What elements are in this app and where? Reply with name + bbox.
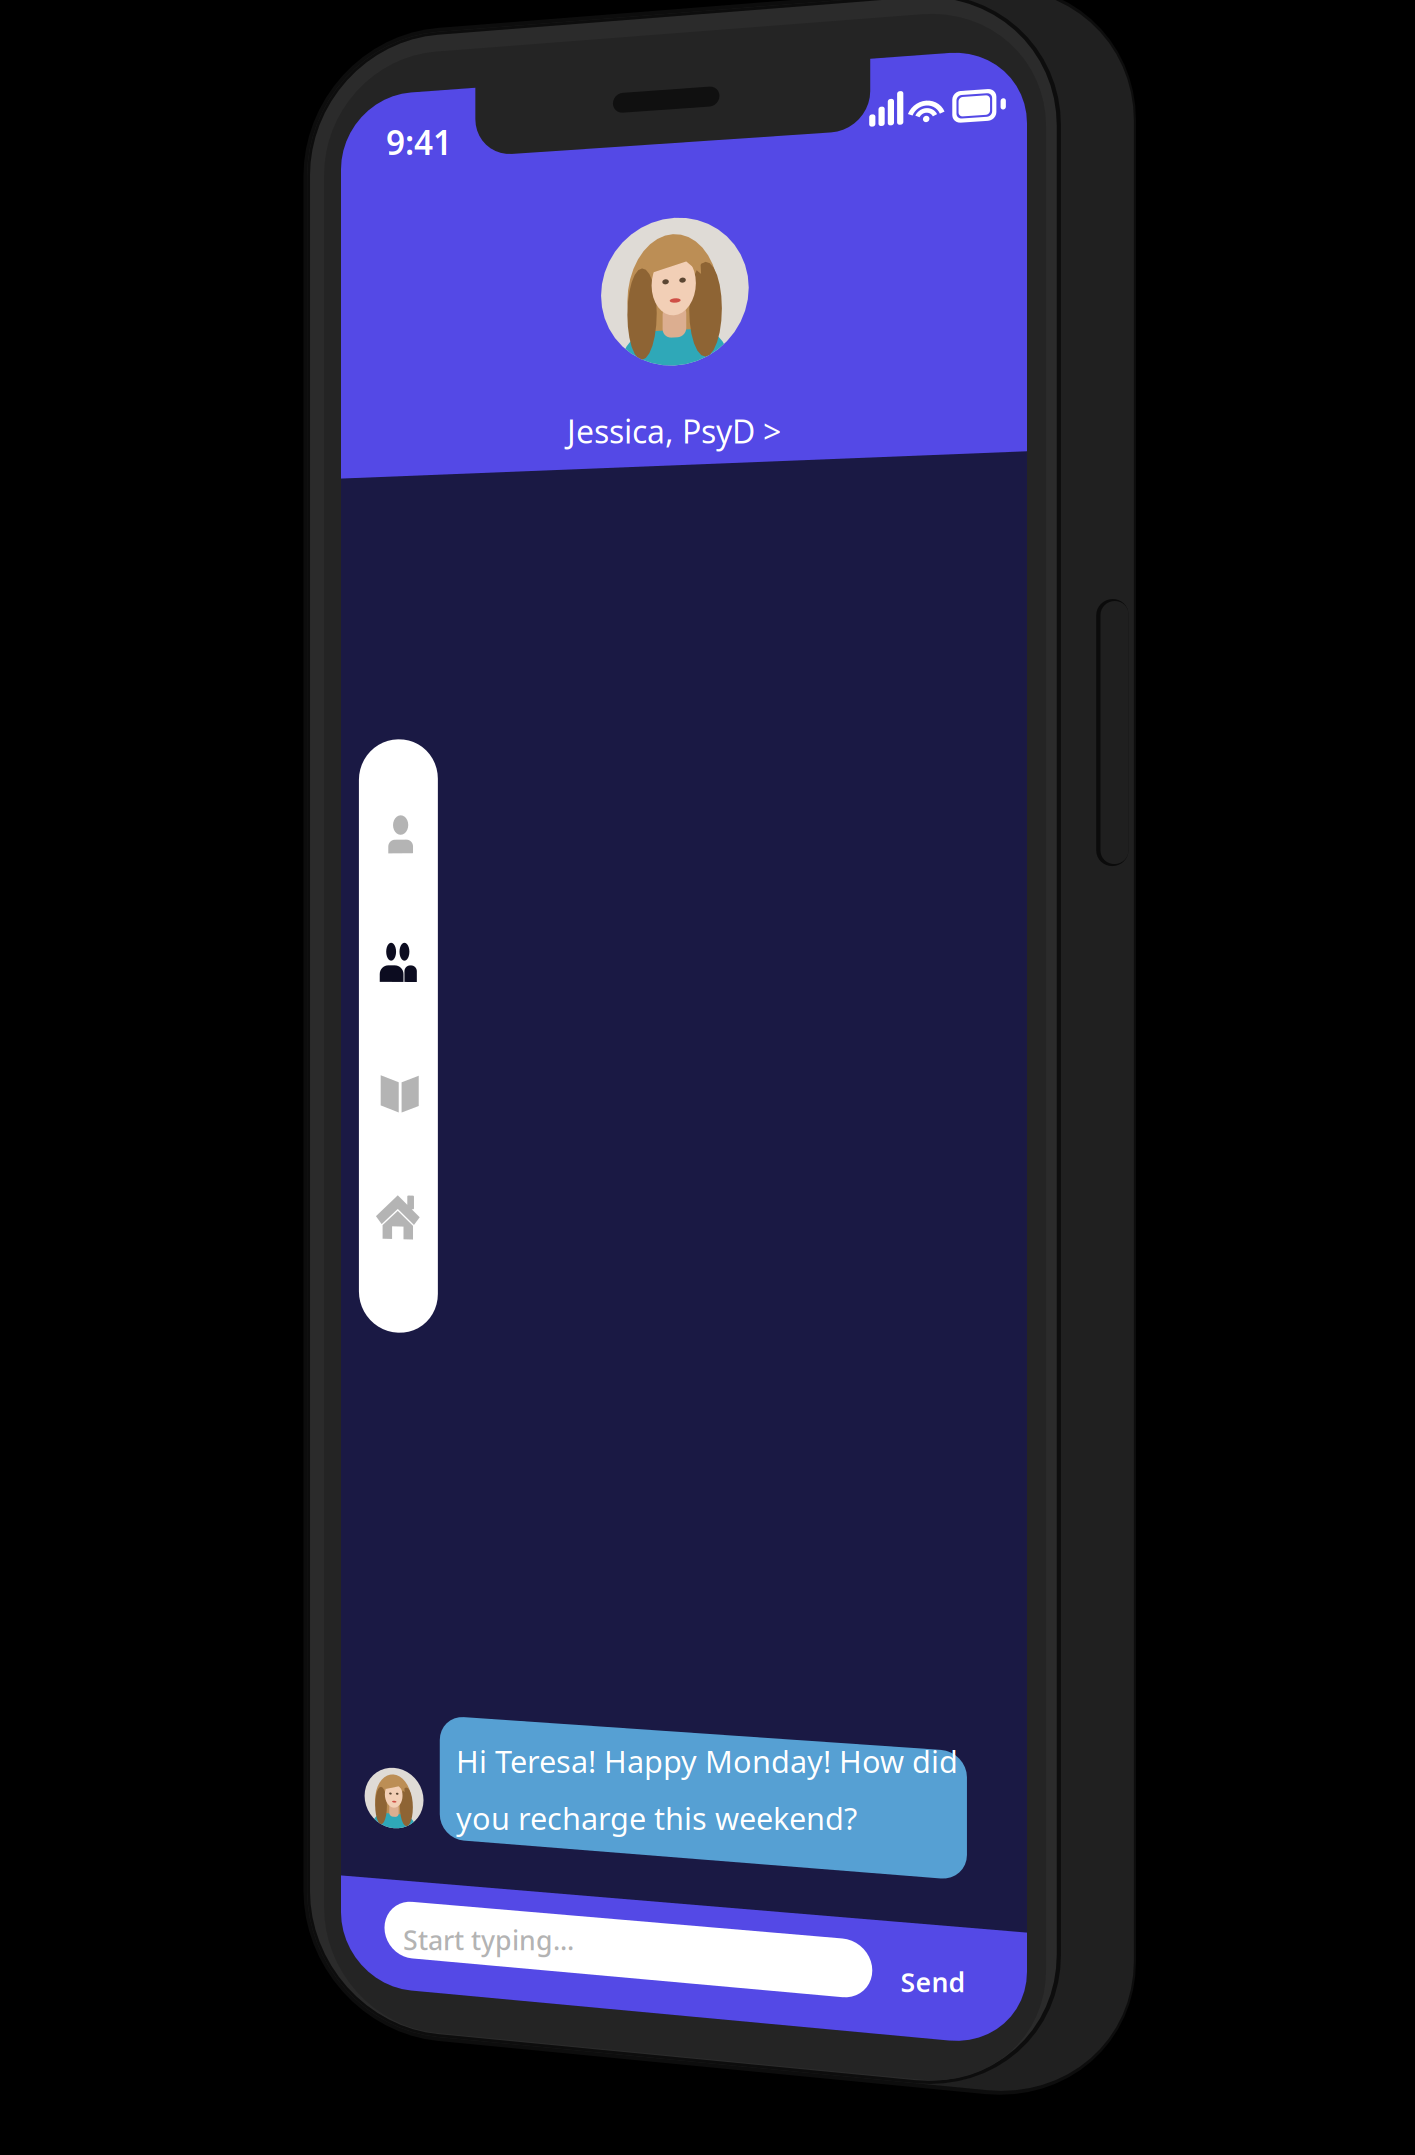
button[interactable]: Jessica, PsyD > [0,0,1415,2155]
button[interactable]: Library [0,0,1415,2155]
staticText: Send [900,1964,965,2000]
button[interactable]: Home [0,0,1415,2155]
staticText: Hi Teresa! Happy Monday! How did [456,1741,958,1781]
staticText: you recharge this weekend? [456,1798,857,1838]
staticText: 9:41 [386,120,452,164]
staticText: Start typing... [403,1922,574,1958]
button[interactable]: Send [0,0,1415,2155]
button[interactable]: Profile [0,0,1415,2155]
staticText: Jessica, PsyD > [567,410,781,452]
button[interactable]: Community [0,0,1415,2155]
button[interactable]: Start typing... [0,0,1415,2155]
